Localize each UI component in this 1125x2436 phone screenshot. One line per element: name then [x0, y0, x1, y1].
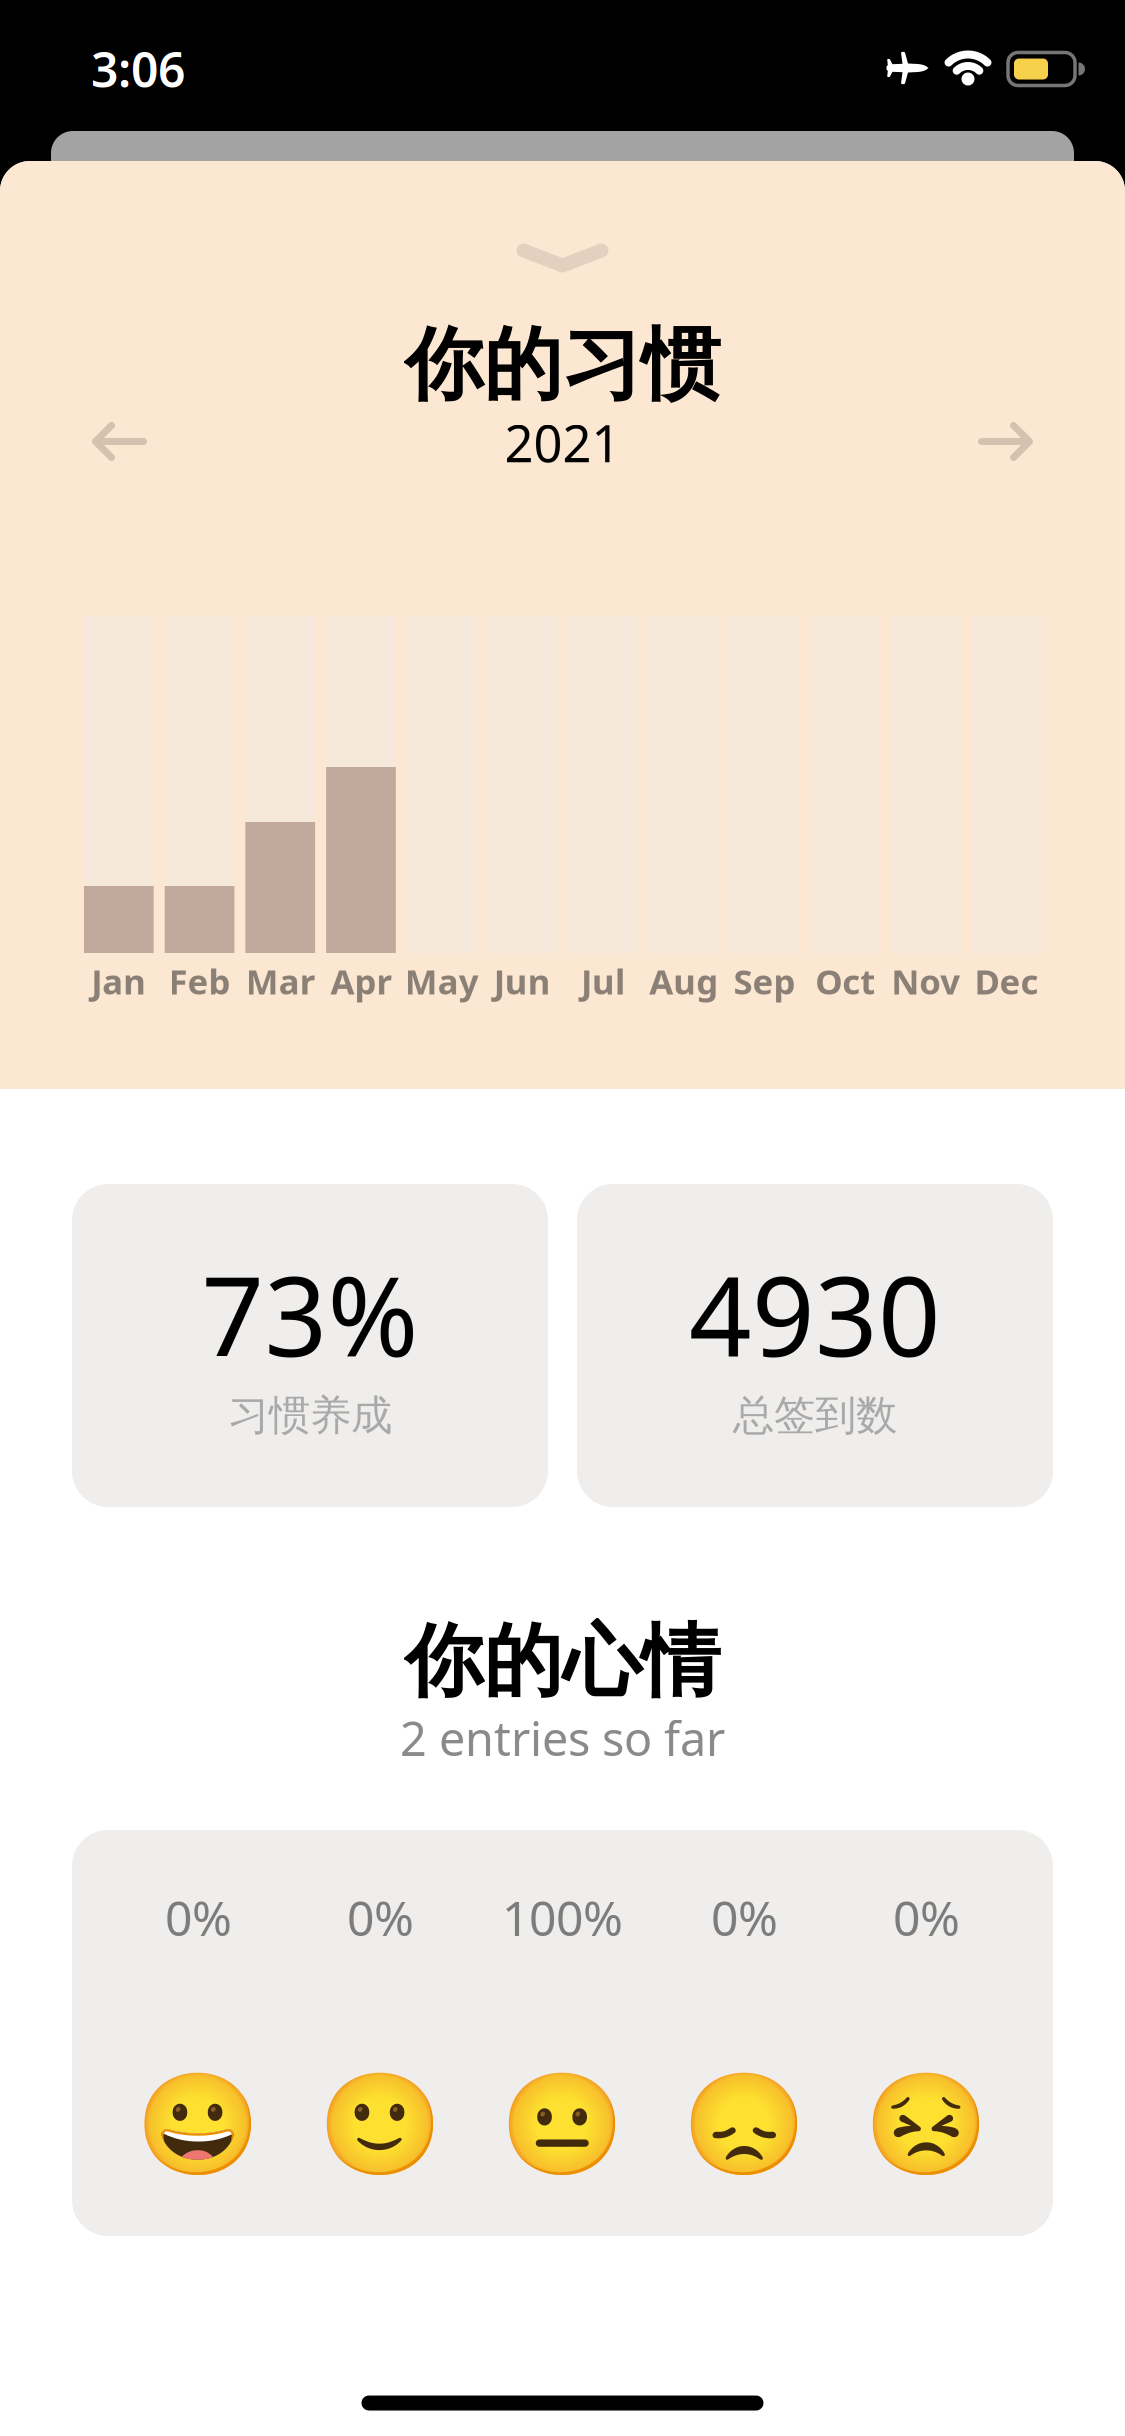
- staticText: Nov: [891, 958, 960, 1004]
- staticText: Mar: [246, 958, 315, 1004]
- staticText: 总签到数: [733, 1390, 897, 1441]
- staticText: 😣: [864, 2068, 989, 2182]
- staticText: 你的心情: [404, 1613, 720, 1710]
- staticText: Dec: [975, 958, 1039, 1004]
- button[interactable]: Previous year: [59, 396, 179, 486]
- staticText: 😞: [682, 2068, 807, 2182]
- staticText: 2021: [504, 409, 620, 476]
- staticText: 3:06: [91, 37, 185, 101]
- staticText: Sep: [733, 958, 795, 1004]
- staticText: Aug: [649, 958, 718, 1004]
- staticText: Jun: [494, 958, 551, 1004]
- staticText: 😐: [500, 2068, 625, 2182]
- staticText: 🙂: [318, 2068, 443, 2182]
- staticText: 100%: [502, 1886, 623, 1949]
- staticText: 你的习惯: [404, 317, 720, 413]
- staticText: Jan: [91, 958, 146, 1004]
- staticText: 0%: [893, 1886, 960, 1949]
- staticText: May: [405, 958, 479, 1004]
- staticText: 73%: [201, 1241, 418, 1387]
- staticText: 0%: [711, 1886, 778, 1949]
- staticText: Jul: [581, 958, 625, 1004]
- button[interactable]: Dismiss: [492, 225, 632, 289]
- staticText: 4930: [689, 1241, 941, 1387]
- staticText: 2 entries so far: [400, 1707, 725, 1769]
- staticText: Apr: [330, 958, 391, 1004]
- staticText: 😀: [136, 2068, 261, 2182]
- staticText: 0%: [165, 1886, 232, 1949]
- staticText: 习惯养成: [228, 1390, 392, 1441]
- button[interactable]: Next year: [945, 396, 1065, 486]
- staticText: Oct: [815, 958, 875, 1004]
- staticText: Feb: [169, 958, 231, 1004]
- staticText: 0%: [347, 1886, 414, 1949]
